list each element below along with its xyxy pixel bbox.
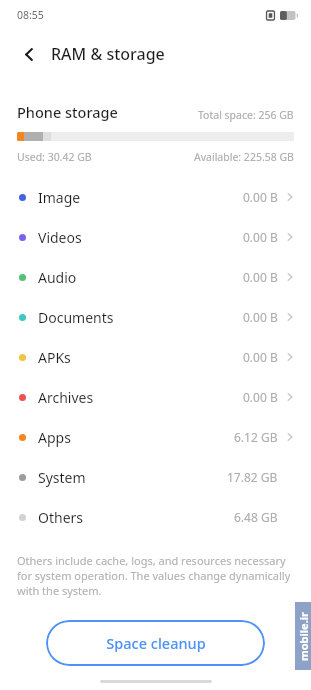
staticText: System [38, 468, 86, 487]
staticText: 17.82 GB [227, 469, 278, 485]
staticText: APKs [38, 348, 71, 367]
button[interactable]: Image [0, 177, 311, 217]
button[interactable]: System [0, 457, 311, 497]
staticText: 6.48 GB [234, 509, 278, 525]
staticText: Space cleanup [106, 633, 206, 653]
staticText: Used: 30.42 GB [17, 150, 92, 164]
staticText: Apps [38, 428, 71, 447]
button[interactable]: Apps [0, 417, 311, 457]
button[interactable]: Documents [0, 297, 311, 337]
staticText: mobile.ir [296, 612, 311, 661]
staticText: Total space: 256 GB [198, 108, 294, 122]
staticText: Audio [38, 268, 77, 287]
staticText: 0.00 B [243, 349, 278, 365]
staticText: Phone storage [17, 102, 118, 122]
button[interactable]: APKs [0, 337, 311, 377]
staticText: Documents [38, 308, 114, 327]
button[interactable]: Videos [0, 217, 311, 257]
staticText: Others include cache, logs, and resource… [17, 553, 294, 598]
staticText: 0.00 B [243, 309, 278, 325]
staticText: Videos [38, 228, 82, 247]
staticText: RAM & storage [51, 43, 165, 65]
button[interactable]: Audio [0, 257, 311, 297]
staticText: Image [38, 188, 81, 207]
button[interactable]: Archives [0, 377, 311, 417]
staticText: 08:55 [17, 8, 44, 22]
button[interactable]: Back [14, 39, 44, 69]
staticText: Available: 225.58 GB [194, 150, 294, 164]
staticText: Others [38, 508, 84, 527]
button[interactable]: Others [0, 497, 311, 537]
button[interactable]: Space cleanup [46, 620, 265, 666]
staticText: 0.00 B [243, 189, 278, 205]
staticText: 0.00 B [243, 229, 278, 245]
staticText: 0.00 B [243, 269, 278, 285]
staticText: 0.00 B [243, 389, 278, 405]
staticText: 6.12 GB [234, 429, 278, 445]
staticText: Archives [38, 388, 94, 407]
